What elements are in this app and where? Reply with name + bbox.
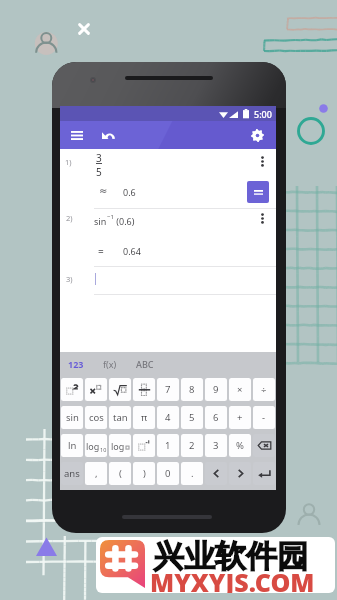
staticText: 0.6 bbox=[123, 186, 136, 198]
staticText: 5 bbox=[96, 165, 102, 179]
button[interactable]: cos bbox=[85, 406, 107, 429]
button[interactable]: 7 bbox=[157, 378, 179, 401]
button[interactable]: Square root bbox=[109, 378, 131, 401]
staticText: 6 bbox=[213, 411, 219, 424]
staticText: , bbox=[95, 467, 98, 480]
staticText: 5:00 bbox=[254, 108, 272, 120]
staticText: % bbox=[236, 439, 244, 452]
button[interactable]: Left bbox=[205, 462, 227, 485]
staticText: sin bbox=[94, 215, 107, 227]
button[interactable]: + bbox=[229, 406, 251, 429]
staticText: 10 bbox=[100, 446, 107, 453]
staticText: (0.6) bbox=[114, 215, 135, 227]
staticText: . bbox=[191, 467, 194, 480]
button[interactable]: . bbox=[181, 462, 203, 485]
staticText: −1 bbox=[107, 213, 114, 221]
staticText: ln bbox=[68, 439, 77, 452]
button[interactable]: Close bbox=[75, 20, 93, 38]
button[interactable]: 0 bbox=[157, 462, 179, 485]
button[interactable]: ans bbox=[61, 462, 83, 485]
button[interactable]: , bbox=[85, 462, 107, 485]
button[interactable]: f(x) bbox=[103, 358, 117, 370]
button[interactable]: 2 bbox=[181, 434, 203, 457]
button[interactable]: % bbox=[229, 434, 251, 457]
button[interactable]: Backspace bbox=[253, 434, 275, 457]
button[interactable]: 5 bbox=[181, 406, 203, 429]
staticText: 3 bbox=[96, 151, 102, 165]
staticText: ans bbox=[64, 467, 80, 480]
staticText: log bbox=[86, 440, 100, 452]
button[interactable]: Undo bbox=[96, 124, 118, 146]
button[interactable]: More options bbox=[255, 211, 269, 225]
staticText: ÷ bbox=[261, 383, 267, 396]
button[interactable]: × bbox=[229, 378, 251, 401]
button[interactable]: 123 bbox=[68, 358, 84, 370]
staticText: π bbox=[141, 411, 148, 424]
button[interactable]: 4 bbox=[157, 406, 179, 429]
staticText: 3 bbox=[213, 439, 219, 452]
staticText: ABC bbox=[136, 358, 154, 370]
staticText: MYXYJS.COM bbox=[150, 565, 315, 593]
button[interactable]: Menu bbox=[66, 124, 88, 146]
button[interactable]: More options bbox=[255, 154, 269, 168]
staticText: ) bbox=[143, 467, 146, 480]
button[interactable]: π bbox=[133, 406, 155, 429]
button[interactable]: Right bbox=[229, 462, 251, 485]
staticText: 3) bbox=[66, 274, 73, 284]
staticText: sin bbox=[66, 411, 79, 424]
button[interactable]: 3 bbox=[205, 434, 227, 457]
button[interactable]: tan bbox=[109, 406, 131, 429]
staticText: 1 bbox=[165, 439, 171, 452]
staticText: tan bbox=[113, 411, 128, 424]
button[interactable]: 6 bbox=[205, 406, 227, 429]
staticText: × bbox=[237, 383, 243, 396]
staticText: 2) bbox=[66, 213, 73, 223]
button[interactable]: ( bbox=[109, 462, 131, 485]
staticText: 0.64 bbox=[123, 245, 141, 257]
staticText: 5 bbox=[189, 411, 195, 424]
staticText: f(x) bbox=[103, 358, 117, 370]
staticText: 1) bbox=[65, 157, 72, 167]
staticText: 2 bbox=[189, 439, 195, 452]
staticText: 4 bbox=[165, 411, 171, 424]
staticText: 8 bbox=[189, 383, 195, 396]
button[interactable]: Log base 10 bbox=[85, 434, 107, 457]
button[interactable]: ln bbox=[61, 434, 83, 457]
button[interactable]: 8 bbox=[181, 378, 203, 401]
staticText: ≈ bbox=[99, 185, 108, 197]
staticText: 7 bbox=[165, 383, 171, 396]
button[interactable]: ) bbox=[133, 462, 155, 485]
button[interactable]: Settings bbox=[246, 124, 268, 146]
button[interactable]: Power bbox=[85, 378, 107, 401]
button[interactable]: 9 bbox=[205, 378, 227, 401]
staticText: ( bbox=[119, 467, 122, 480]
button[interactable]: Inverse bbox=[133, 434, 155, 457]
staticText: 123 bbox=[68, 358, 84, 370]
button[interactable]: ÷ bbox=[253, 378, 275, 401]
staticText: + bbox=[237, 411, 243, 424]
staticText: 0 bbox=[165, 467, 171, 480]
button[interactable]: ABC bbox=[136, 358, 154, 370]
button[interactable]: Equals bbox=[247, 181, 269, 203]
staticText: = bbox=[98, 244, 104, 258]
staticText: 兴业软件园 bbox=[153, 537, 308, 576]
staticText: log bbox=[111, 440, 125, 452]
button[interactable]: Log base n bbox=[109, 434, 131, 457]
button[interactable]: Square bbox=[61, 378, 83, 401]
button[interactable]: Fraction bbox=[133, 378, 155, 401]
button[interactable]: 1 bbox=[157, 434, 179, 457]
button[interactable]: - bbox=[253, 406, 275, 429]
staticText: 9 bbox=[213, 383, 219, 396]
staticText: - bbox=[262, 411, 266, 424]
button[interactable]: Enter bbox=[253, 462, 275, 485]
staticText: cos bbox=[89, 411, 104, 424]
button[interactable]: sin bbox=[61, 406, 83, 429]
